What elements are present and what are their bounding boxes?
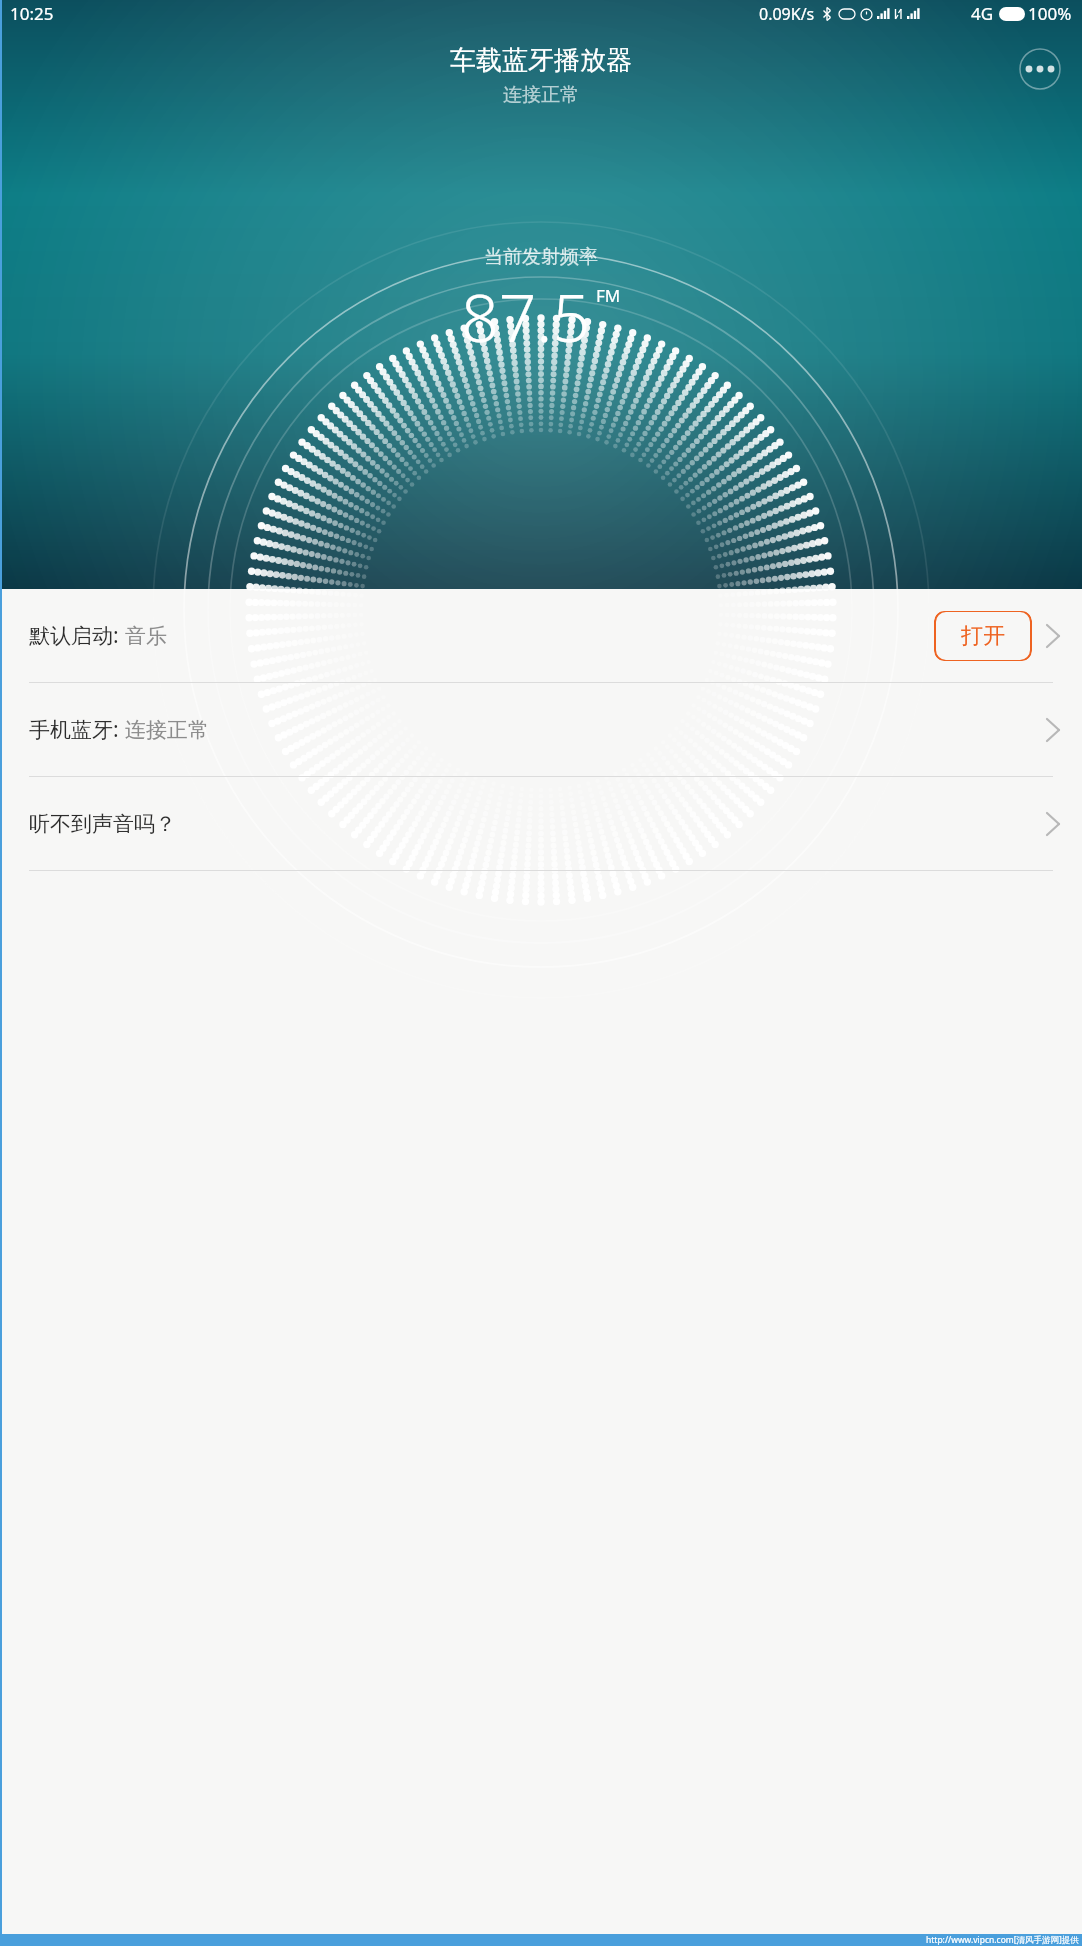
button[interactable]: 手机蓝牙: — [0, 683, 1082, 777]
staticText: 打开 — [961, 622, 1005, 650]
staticText: 0.09K/s — [759, 3, 815, 25]
staticText: 车载蓝牙播放器 — [450, 44, 632, 77]
staticText: 默认启动: — [29, 621, 125, 650]
button[interactable]: 听不到声音吗？ — [0, 777, 1082, 871]
staticText: 连接正常 — [125, 717, 209, 743]
staticText: 100% — [1028, 2, 1072, 25]
staticText: 音乐 — [125, 623, 167, 649]
staticText: 手机蓝牙: — [29, 715, 125, 744]
staticText: 10:25 — [10, 2, 54, 25]
button[interactable]: 打开 — [934, 611, 1032, 661]
staticText: 当前发射频率 — [484, 245, 598, 269]
button[interactable]: 默认启动: — [0, 589, 1082, 683]
button[interactable]: More options — [1019, 48, 1061, 90]
staticText: 87.5 — [461, 271, 591, 361]
staticText: 连接正常 — [503, 83, 579, 107]
staticText: 听不到声音吗？ — [29, 811, 176, 837]
staticText: 4G — [971, 2, 994, 25]
staticText: http://www.vipcn.com[清风手游网]提供 — [926, 1934, 1079, 1946]
staticText: FM — [596, 284, 621, 307]
